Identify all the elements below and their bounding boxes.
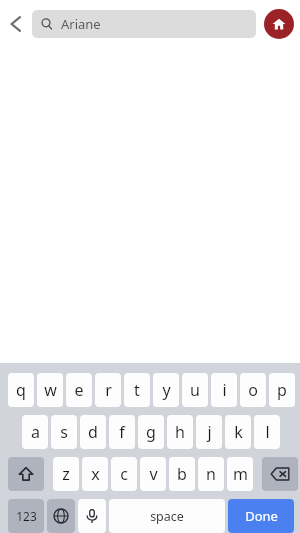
- staticText: z: [62, 463, 70, 485]
- staticText: e: [74, 379, 84, 401]
- button[interactable]: b: [169, 457, 195, 491]
- button[interactable]: a: [22, 415, 48, 449]
- button[interactable]: t: [124, 373, 150, 407]
- staticText: x: [91, 463, 100, 485]
- button[interactable]: v: [140, 457, 166, 491]
- button[interactable]: g: [138, 415, 164, 449]
- staticText: 123: [16, 508, 37, 524]
- staticText: j: [207, 421, 212, 443]
- button[interactable]: Change keyboard: [47, 499, 75, 533]
- staticText: c: [120, 463, 128, 485]
- button[interactable]: Shift: [8, 457, 44, 491]
- staticText: p: [277, 379, 287, 401]
- staticText: v: [149, 463, 158, 485]
- staticText: s: [60, 421, 68, 443]
- button[interactable]: i: [211, 373, 237, 407]
- button[interactable]: q: [8, 373, 34, 407]
- button[interactable]: r: [95, 373, 121, 407]
- button[interactable]: y: [153, 373, 179, 407]
- button[interactable]: l: [254, 415, 280, 449]
- staticText: m: [233, 463, 248, 485]
- button[interactable]: Ariane: [32, 10, 256, 38]
- staticText: l: [265, 421, 270, 443]
- button[interactable]: o: [240, 373, 266, 407]
- staticText: w: [44, 379, 57, 401]
- button[interactable]: Voice input: [78, 499, 106, 533]
- staticText: n: [206, 463, 216, 485]
- button[interactable]: d: [80, 415, 106, 449]
- button[interactable]: 123: [8, 499, 44, 533]
- staticText: f: [119, 421, 125, 443]
- staticText: h: [175, 421, 185, 443]
- staticText: Ariane: [61, 15, 101, 33]
- button[interactable]: Back: [0, 2, 32, 46]
- staticText: space: [150, 508, 184, 525]
- button[interactable]: z: [53, 457, 79, 491]
- button[interactable]: w: [37, 373, 63, 407]
- button[interactable]: k: [225, 415, 251, 449]
- staticText: g: [146, 421, 156, 443]
- button[interactable]: Done: [228, 499, 294, 533]
- button[interactable]: j: [196, 415, 222, 449]
- staticText: b: [177, 463, 187, 485]
- staticText: Done: [245, 507, 278, 525]
- button[interactable]: f: [109, 415, 135, 449]
- button[interactable]: x: [82, 457, 108, 491]
- button[interactable]: h: [167, 415, 193, 449]
- staticText: r: [105, 379, 112, 401]
- button[interactable]: p: [269, 373, 295, 407]
- button[interactable]: space: [109, 499, 225, 533]
- staticText: t: [134, 379, 140, 401]
- button[interactable]: e: [66, 373, 92, 407]
- staticText: o: [248, 379, 258, 401]
- staticText: k: [234, 421, 243, 443]
- staticText: i: [222, 379, 227, 401]
- staticText: u: [190, 379, 200, 401]
- button[interactable]: n: [198, 457, 224, 491]
- button[interactable]: u: [182, 373, 208, 407]
- button[interactable]: m: [227, 457, 253, 491]
- button[interactable]: s: [51, 415, 77, 449]
- staticText: q: [16, 379, 26, 401]
- staticText: d: [88, 421, 98, 443]
- button[interactable]: Home: [264, 9, 294, 39]
- staticText: y: [162, 379, 171, 401]
- staticText: a: [31, 421, 40, 443]
- button[interactable]: c: [111, 457, 137, 491]
- button[interactable]: Backspace: [262, 457, 298, 491]
